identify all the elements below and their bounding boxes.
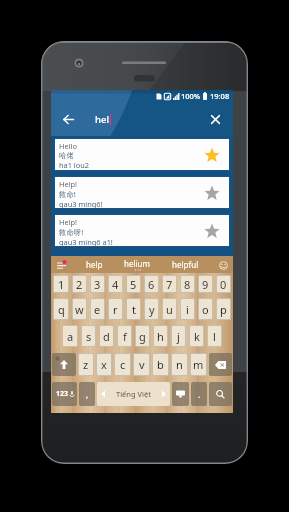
button[interactable]: t [127,299,140,319]
button[interactable]: i [181,299,194,319]
button[interactable]: 5 [127,276,140,292]
button[interactable]: Period [191,382,207,406]
staticText: 5 [130,277,137,292]
staticText: p [220,302,227,317]
button[interactable]: Numbers [52,382,77,406]
staticText: s [86,329,92,344]
staticText: gau3 ming6! [59,199,103,208]
button[interactable]: Emoji [218,260,228,270]
staticText: n [176,357,183,372]
staticText: c [120,357,126,372]
button[interactable]: Backspace [209,353,232,376]
staticText: 8 [184,277,191,292]
staticText: f [123,329,127,344]
button[interactable]: 6 [145,276,158,292]
staticText: Help! [59,217,78,227]
staticText: 哈佬 [59,151,74,160]
staticText: 123 [56,389,69,399]
staticText: 0 [220,277,227,292]
staticText: y [149,302,155,317]
button[interactable]: v [134,354,149,375]
button[interactable]: s [82,326,95,346]
staticText: i [186,302,189,317]
button[interactable]: r [109,299,122,319]
button[interactable]: b [153,354,168,375]
button[interactable]: Search [209,382,232,406]
staticText: 1 [58,277,65,292]
staticText: Hello [59,141,77,151]
button[interactable]: Help! [55,215,229,246]
staticText: h [157,329,164,344]
staticText: 2 [76,277,83,292]
staticText: q [58,302,65,317]
staticText: v [139,357,145,372]
staticText: helpful [172,259,199,270]
button[interactable]: Settings [56,260,66,270]
staticText: r [113,302,118,317]
button[interactable]: Comma [79,382,95,406]
staticText: w [75,302,84,317]
staticText: gau3 ming6 a1! [59,237,113,246]
button[interactable]: a [63,326,77,346]
button[interactable]: k [190,326,203,346]
button[interactable]: f [118,326,131,346]
button[interactable]: q [54,299,68,319]
staticText: z [83,357,89,372]
button[interactable]: c [115,354,130,375]
button[interactable]: Switch keyboard [172,382,189,406]
button[interactable]: x [97,354,111,375]
staticText: Help! [59,179,78,189]
button[interactable]: h [154,326,167,346]
button[interactable]: 4 [109,276,122,292]
button[interactable]: 2 [73,276,86,292]
button[interactable]: e [91,299,104,319]
button[interactable]: m [191,354,206,375]
button[interactable]: u [163,299,176,319]
staticText: j [177,329,180,344]
button[interactable]: Shift [52,353,76,376]
button[interactable]: 9 [199,276,212,292]
staticText: 100% [181,91,201,101]
staticText: help [86,259,103,270]
staticText: g [139,329,146,344]
button[interactable]: Clear [201,105,229,133]
button[interactable]: 1 [54,276,68,292]
button[interactable]: g [136,326,149,346]
button[interactable]: o [199,299,212,319]
button[interactable]: l [208,326,221,346]
staticText: 6 [148,277,155,292]
staticText: u [166,302,173,317]
button[interactable]: Space [97,382,170,406]
staticText: b [157,357,164,372]
staticText: e [94,302,101,317]
button[interactable]: Hello [55,139,229,170]
staticText: 4 [112,277,119,292]
staticText: 9 [202,277,209,292]
staticText: 救命! [59,189,76,199]
button[interactable]: d [100,326,113,346]
staticText: ha1 lou2 [59,160,90,170]
staticText: hel [95,113,109,126]
button[interactable]: n [172,354,187,375]
staticText: 7 [166,277,173,292]
button[interactable]: j [172,326,185,346]
button[interactable]: z [79,354,93,375]
button[interactable]: Help! [55,177,229,208]
staticText: k [194,329,200,344]
button[interactable]: 7 [163,276,176,292]
button[interactable]: y [145,299,158,319]
button[interactable]: 3 [91,276,104,292]
button[interactable]: 8 [181,276,194,292]
button[interactable]: p [217,299,230,319]
staticText: 3 [94,277,101,292]
staticText: 救命呀! [59,227,84,237]
button[interactable]: 0 [217,276,230,292]
button[interactable]: Back [51,102,85,136]
staticText: helium [124,258,151,269]
staticText: . [198,389,201,400]
staticText: d [103,329,110,344]
staticText: t [132,302,136,317]
staticText: , [86,389,89,400]
button[interactable]: w [73,299,86,319]
staticText: x [101,357,107,372]
